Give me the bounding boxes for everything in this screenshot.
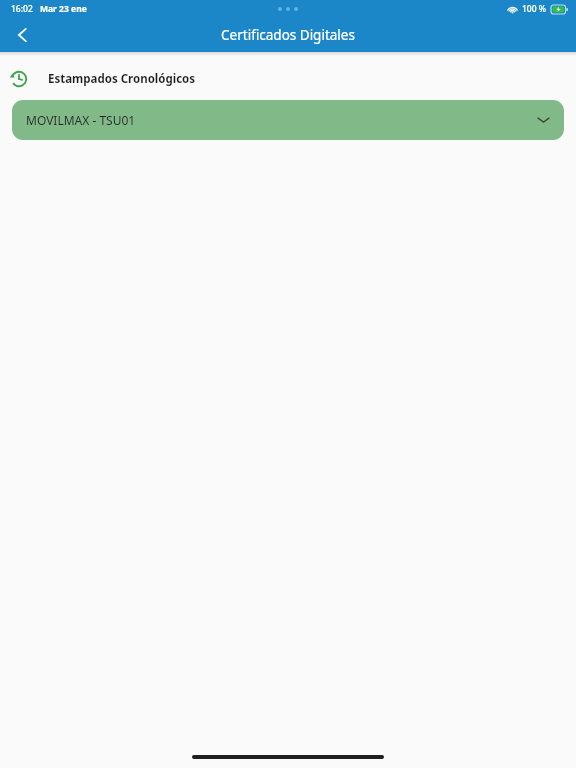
button[interactable]: MOVILMAX - TSU01 [12,100,564,140]
staticText: Estampados Cronológicos [48,71,196,87]
staticText: 16:02 [11,3,33,15]
button[interactable]: Back [0,18,44,52]
staticText: Certificados Digitales [0,26,576,44]
staticText: 100 % [522,3,547,15]
staticText: Mar 23 ene [40,3,87,15]
button[interactable]: Estampados Cronológicos [0,66,576,92]
staticText: MOVILMAX - TSU01 [26,112,136,128]
